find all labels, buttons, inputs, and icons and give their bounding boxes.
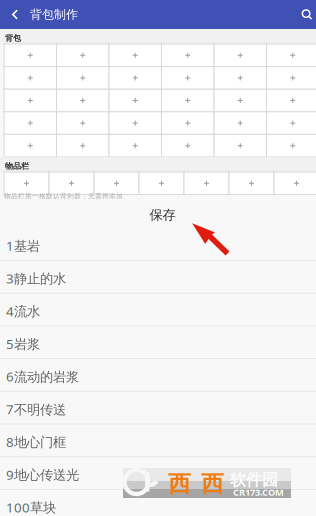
button[interactable]: Add item (266, 112, 316, 134)
staticText: 背包 (5, 33, 21, 43)
button[interactable]: Add item (56, 67, 109, 89)
button[interactable]: Add item (184, 172, 229, 195)
button[interactable]: Search (298, 0, 316, 29)
button[interactable]: Add item (4, 89, 56, 112)
staticText: 5岩浆 (6, 335, 40, 353)
staticText: 8地心门框 (6, 433, 66, 451)
button[interactable]: Add item (161, 89, 214, 112)
button[interactable]: 1基岩 (0, 228, 316, 261)
button[interactable]: Add item (109, 112, 161, 134)
staticText: 西 (201, 470, 224, 498)
button[interactable]: Add item (161, 67, 214, 89)
staticText: 西 (168, 470, 191, 498)
button[interactable]: Add item (161, 112, 214, 134)
button[interactable]: Add item (266, 67, 316, 89)
button[interactable]: Add item (214, 134, 266, 157)
button[interactable]: Add item (214, 112, 266, 134)
button[interactable]: Add item (4, 44, 56, 67)
button[interactable]: Add item (139, 172, 184, 195)
button[interactable]: Add item (4, 112, 56, 134)
button[interactable]: Add item (56, 112, 109, 134)
staticText: CR173.COM (233, 486, 284, 498)
button[interactable]: Add item (214, 67, 266, 89)
staticText: 9地心传送光 (6, 466, 79, 483)
button[interactable]: Add item (214, 44, 266, 67)
staticText: 物品栏第一格默认背剑器，无需再添加 (4, 192, 123, 200)
staticText: 7不明传送 (6, 400, 66, 418)
button[interactable]: 保存 (0, 203, 316, 227)
button[interactable]: Add item (109, 67, 161, 89)
button[interactable]: Add item (161, 44, 214, 67)
staticText: 保存 (149, 207, 175, 223)
staticText: 物品栏 (5, 161, 29, 171)
button[interactable]: 3静止的水 (0, 261, 316, 294)
button[interactable]: Add item (109, 134, 161, 157)
staticText: 100草块 (6, 498, 56, 516)
button[interactable]: Add item (161, 134, 214, 157)
button[interactable]: Add item (94, 172, 139, 195)
button[interactable]: Add item (56, 134, 109, 157)
button[interactable]: Add item (4, 172, 49, 195)
button[interactable]: 5岩浆 (0, 326, 316, 359)
button[interactable]: 9地心传送光 (0, 457, 316, 490)
button[interactable]: Add item (109, 44, 161, 67)
button[interactable]: Add item (274, 172, 316, 195)
staticText: 4流水 (6, 302, 40, 320)
button[interactable]: Add item (266, 134, 316, 157)
button[interactable]: Add item (109, 89, 161, 112)
staticText: 软件园 (230, 470, 278, 490)
button[interactable]: Add item (229, 172, 274, 195)
button[interactable]: 7不明传送 (0, 392, 316, 424)
button[interactable]: 8地心门框 (0, 424, 316, 457)
button[interactable]: Add item (49, 172, 94, 195)
button[interactable]: Add item (214, 89, 266, 112)
button[interactable]: Add item (266, 44, 316, 67)
staticText: 3静止的水 (6, 269, 66, 287)
staticText: 6流动的岩浆 (6, 368, 79, 385)
button[interactable]: 6流动的岩浆 (0, 359, 316, 392)
button[interactable]: Add item (4, 67, 56, 89)
button[interactable]: Add item (56, 89, 109, 112)
staticText: 1基岩 (6, 237, 40, 254)
button[interactable]: Back (0, 0, 30, 29)
button[interactable]: Add item (4, 134, 56, 157)
button[interactable]: Add item (266, 89, 316, 112)
button[interactable]: 100草块 (0, 490, 316, 516)
button[interactable]: Add item (56, 44, 109, 67)
button[interactable]: 4流水 (0, 294, 316, 326)
staticText: 背包制作 (30, 7, 78, 22)
